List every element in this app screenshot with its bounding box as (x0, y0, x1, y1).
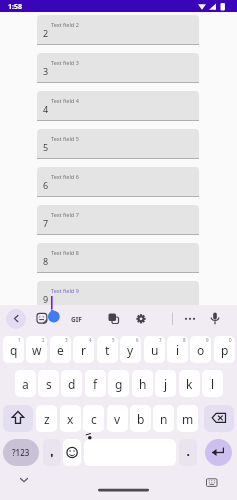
staticText: 1:58 (8, 2, 22, 12)
staticText: l (211, 376, 215, 392)
staticText: 8 (183, 337, 186, 343)
button[interactable]: Text field 8 (37, 243, 199, 273)
button[interactable]: c (83, 405, 104, 432)
button[interactable]: v (107, 405, 128, 432)
staticText: 5 (43, 141, 49, 153)
staticText: Text field 8 (51, 249, 79, 256)
button[interactable]: Text field 7 (37, 205, 199, 235)
staticText: a (22, 376, 29, 392)
staticText: i (176, 342, 180, 358)
button[interactable]: b (130, 405, 151, 432)
staticText: g (115, 376, 123, 392)
button[interactable]: o (190, 336, 211, 363)
button[interactable]: Text field 6 (37, 167, 199, 197)
button[interactable]: p (214, 336, 235, 363)
button[interactable] (43, 439, 61, 466)
button[interactable]: Text field 2 (37, 15, 199, 45)
button[interactable]: h (132, 370, 153, 397)
button[interactable]: Text field 3 (37, 53, 199, 83)
staticText: ?123 (12, 447, 30, 458)
staticText: Text field 3 (51, 59, 79, 66)
staticText: j (164, 376, 168, 392)
staticText: m (182, 411, 194, 427)
button[interactable]: Text field 9 (37, 281, 199, 311)
button[interactable] (204, 405, 234, 432)
button[interactable]: g (108, 370, 129, 397)
staticText: n (160, 411, 168, 427)
staticText: f (93, 376, 98, 392)
button[interactable]: a (15, 370, 36, 397)
button[interactable]: s (38, 370, 59, 397)
staticText: 6 (43, 179, 49, 191)
staticText: q (10, 342, 18, 358)
button[interactable] (6, 309, 26, 329)
button[interactable]: d (61, 370, 82, 397)
staticText: 2 (43, 27, 49, 39)
staticText: Text field 2 (51, 21, 79, 28)
staticText: c (91, 411, 97, 427)
button[interactable]: ?123 (3, 439, 39, 466)
staticText: u (151, 342, 159, 358)
staticText: 9 (206, 337, 209, 343)
button[interactable]: y (120, 336, 141, 363)
button[interactable]: k (179, 370, 200, 397)
button[interactable]: n (153, 405, 174, 432)
staticText: o (197, 342, 205, 358)
button[interactable] (205, 439, 232, 466)
staticText: GIF (71, 315, 82, 324)
button[interactable]: Text field 5 (37, 129, 199, 159)
button[interactable]: e (50, 336, 71, 363)
staticText: 6 (136, 337, 139, 343)
staticText: x (67, 411, 74, 427)
staticText: 3 (65, 337, 68, 343)
staticText: r (81, 342, 86, 358)
staticText: b (137, 411, 145, 427)
staticText: 4 (43, 103, 49, 115)
staticText: z (44, 411, 50, 427)
staticText: h (139, 376, 147, 392)
button[interactable]: j (155, 370, 176, 397)
button[interactable]: m (177, 405, 198, 432)
staticText: 7 (159, 337, 162, 343)
button[interactable] (3, 405, 33, 432)
button[interactable]: t (97, 336, 118, 363)
button[interactable]: l (202, 370, 223, 397)
staticText: k (186, 376, 193, 392)
staticText: Text field 6 (51, 173, 79, 180)
button[interactable]: i (167, 336, 188, 363)
button[interactable]: Text field 4 (37, 91, 199, 121)
staticText: e (57, 342, 64, 358)
staticText: Text field 5 (51, 135, 79, 142)
staticText: Text field 4 (51, 97, 79, 104)
button[interactable] (63, 439, 81, 466)
button[interactable]: w (26, 336, 47, 363)
staticText: s (46, 376, 52, 392)
staticText: 3 (43, 65, 49, 77)
staticText: w (32, 342, 42, 358)
staticText: 8 (43, 255, 49, 267)
staticText: 5 (112, 337, 115, 343)
staticText: 2 (42, 337, 45, 343)
staticText: p (221, 342, 229, 358)
button[interactable]: q (3, 336, 24, 363)
staticText: y (127, 342, 134, 358)
staticText: 9 (43, 293, 49, 305)
staticText: t (105, 342, 110, 358)
staticText: d (68, 376, 76, 392)
button[interactable]: x (60, 405, 81, 432)
staticText: v (114, 411, 121, 427)
staticText: 7 (43, 217, 49, 229)
button[interactable]: u (144, 336, 165, 363)
button[interactable]: z (36, 405, 57, 432)
staticText: Text field 7 (51, 211, 79, 218)
staticText: 0 (229, 337, 232, 343)
button[interactable] (179, 439, 197, 466)
button[interactable]: r (73, 336, 94, 363)
staticText: 4 (89, 337, 92, 343)
staticText: 1 (18, 337, 21, 343)
button[interactable]: f (85, 370, 106, 397)
staticText: Text field 9 (51, 287, 79, 294)
